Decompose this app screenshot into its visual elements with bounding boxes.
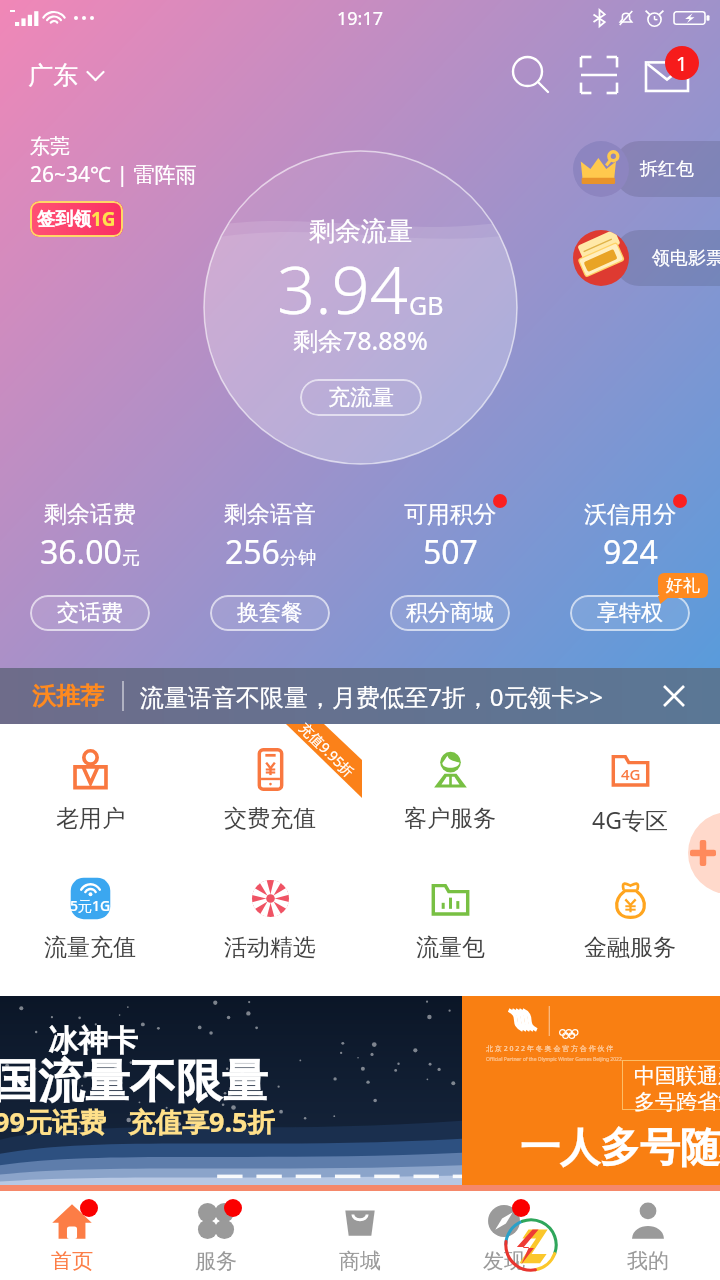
staticText: 36.00 xyxy=(40,530,122,574)
button[interactable] xyxy=(615,230,720,286)
button[interactable]: Scan xyxy=(565,41,633,109)
button[interactable]: 发现 xyxy=(432,1191,576,1280)
button[interactable]: 签到领 xyxy=(30,201,123,237)
staticText: 交话费 xyxy=(57,599,123,627)
button[interactable]: 5元1G xyxy=(0,877,180,996)
staticText: 流量包 xyxy=(416,933,485,962)
staticText: 我的 xyxy=(627,1248,669,1274)
staticText: 服务 xyxy=(195,1248,237,1274)
staticText: GB xyxy=(409,288,444,322)
staticText: Official Partner of the Olympic Winter G… xyxy=(486,1056,622,1063)
button[interactable]: Close xyxy=(650,672,698,720)
staticText: 分钟 xyxy=(280,547,316,570)
staticText: 26~34℃ | 雷阵雨 xyxy=(30,160,197,189)
staticText: 256 xyxy=(225,530,280,574)
staticText: 一人多号随心 xyxy=(520,1122,720,1172)
button[interactable]: 活动精选 xyxy=(180,877,360,996)
button[interactable]: 首页 xyxy=(0,1191,144,1280)
staticText: 充值享9.5折 xyxy=(128,1103,275,1140)
button[interactable]: 我的 xyxy=(576,1191,720,1280)
staticText: 签到领 xyxy=(37,208,91,231)
button[interactable]: Search xyxy=(497,41,565,109)
button[interactable]: 北 京 2 0 2 2 年 冬 奥 会 官 方 合 作 伙 伴 xyxy=(462,996,720,1185)
button[interactable]: 4G xyxy=(540,748,720,877)
staticText: 客户服务 xyxy=(404,804,496,833)
staticText: 东莞 xyxy=(30,134,70,159)
staticText: 99元话费 xyxy=(0,1103,106,1140)
staticText: 积分商城 xyxy=(406,599,494,627)
button[interactable]: 享特权 xyxy=(570,595,690,631)
button[interactable]: 充流量 xyxy=(300,379,422,416)
staticText: 发现 xyxy=(483,1248,525,1274)
button[interactable]: 广东 xyxy=(0,52,115,99)
button[interactable]: 积分商城 xyxy=(390,595,510,631)
staticText: 4G专区 xyxy=(592,804,668,835)
staticText: 冰神卡 xyxy=(48,1022,138,1060)
staticText: 广东 xyxy=(28,60,78,91)
staticText: 商城 xyxy=(339,1248,381,1274)
staticText: 交费充值 xyxy=(224,804,316,833)
staticText: 剩余语音 xyxy=(224,500,316,529)
staticText: 流量充值 xyxy=(44,933,136,962)
staticText: 充值9.95折 xyxy=(295,718,358,781)
staticText: 可用积分 xyxy=(404,500,496,529)
staticText: 3.94 xyxy=(277,242,409,333)
staticText: 19:17 xyxy=(337,6,384,31)
staticText: 924 xyxy=(603,530,658,574)
staticText: 中国联通新 xyxy=(634,1063,720,1089)
staticText: 元 xyxy=(122,547,140,570)
button[interactable]: Add xyxy=(688,812,720,894)
staticText: 好礼 xyxy=(666,575,700,596)
button[interactable]: 冰神卡 xyxy=(0,996,462,1185)
button[interactable]: 商城 xyxy=(288,1191,432,1280)
staticText: 剩余78.88% xyxy=(293,323,428,357)
staticText: 沃推荐 xyxy=(32,681,104,711)
staticText: 首页 xyxy=(51,1248,93,1274)
button[interactable]: 流量包 xyxy=(360,877,540,996)
button[interactable]: Messages xyxy=(633,41,701,109)
staticText: 1 xyxy=(676,50,688,77)
staticText: 5元1G xyxy=(70,896,111,915)
button[interactable]: 换套餐 xyxy=(210,595,330,631)
button[interactable]: 金融服务 xyxy=(540,877,720,996)
staticText: 剩余话费 xyxy=(44,500,136,529)
staticText: 507 xyxy=(423,530,478,574)
staticText: 北 京 2 0 2 2 年 冬 奥 会 官 方 合 作 伙 伴 xyxy=(486,1044,614,1054)
staticText: 流量语音不限量，月费低至7折，0元领卡>> xyxy=(140,680,603,713)
staticText: 多号跨省管 xyxy=(634,1089,720,1113)
button[interactable]: Logo xyxy=(503,1217,559,1273)
staticText: 领电影票 xyxy=(652,247,720,270)
button[interactable]: 老用户 xyxy=(0,748,180,877)
button[interactable]: 交费充值 xyxy=(180,748,360,877)
button[interactable] xyxy=(615,141,720,197)
button[interactable]: 服务 xyxy=(144,1191,288,1280)
staticText: 4G xyxy=(621,764,641,784)
staticText: 换套餐 xyxy=(237,599,303,627)
staticText: 剩余流量 xyxy=(309,215,413,248)
staticText: 国流量不限量 xyxy=(0,1053,268,1111)
button[interactable]: 交话费 xyxy=(30,595,150,631)
button[interactable]: 客户服务 xyxy=(360,748,540,877)
staticText: 沃信用分 xyxy=(584,500,676,529)
staticText: 老用户 xyxy=(56,804,125,833)
staticText: 拆红包 xyxy=(640,158,694,181)
staticText: 1G xyxy=(91,206,116,232)
staticText: 享特权 xyxy=(597,599,663,627)
staticText: 活动精选 xyxy=(224,933,316,962)
staticText: 充流量 xyxy=(328,384,394,412)
staticText: 金融服务 xyxy=(584,933,676,962)
